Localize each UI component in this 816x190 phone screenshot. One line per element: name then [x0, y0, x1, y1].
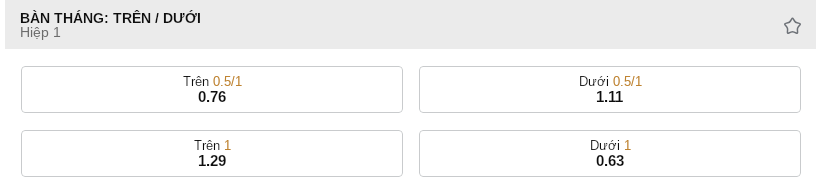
staticText: 0.63 [596, 152, 624, 169]
button[interactable]: BÀN THÁNG: TRÊN / DƯỚI [5, 0, 816, 49]
button[interactable]: Favourite [775, 8, 809, 42]
staticText: 1.29 [198, 152, 226, 169]
button[interactable]: Trên 0.5/1 [21, 66, 403, 113]
staticText: 0.76 [198, 88, 226, 105]
button[interactable]: Trên 1 [21, 130, 403, 177]
staticText: Hiệp 1 [20, 24, 61, 40]
staticText: Trên 0.5/1 [183, 74, 242, 89]
staticText: Dưới 0.5/1 [579, 74, 642, 89]
staticText: Dưới 1 [590, 138, 631, 153]
button[interactable]: Dưới 0.5/1 [419, 66, 801, 113]
staticText: BÀN THÁNG: TRÊN / DƯỚI [20, 10, 201, 26]
button[interactable]: Dưới 1 [419, 130, 801, 177]
staticText: Trên 1 [194, 138, 231, 153]
staticText: 1.11 [596, 88, 624, 105]
